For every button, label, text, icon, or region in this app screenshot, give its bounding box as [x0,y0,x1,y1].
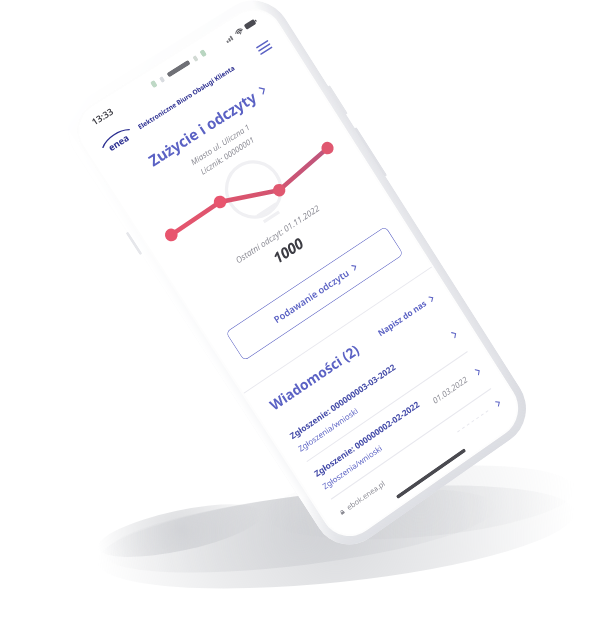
button[interactable]: Menu [249,33,279,63]
staticText: Ostatni odczyt: 01.11.2022 [178,167,375,302]
staticText: Zgłoszenia/wnioski [320,442,384,491]
staticText: Zużycie i odczyty [144,86,260,170]
staticText: Podawanie odczytu [271,266,352,326]
staticText: enea [106,131,131,153]
staticText: 13:33 [89,104,116,127]
staticText: Zgłoszenia/wnioski [296,404,360,454]
button[interactable]: Wiadomości (2) [266,340,363,414]
button[interactable]: Zużycie i odczyty [105,56,308,196]
button[interactable]: Enea logo [98,124,136,156]
staticText: ebok.enea.pl [345,478,387,512]
staticText: Napisz do nas [376,297,429,339]
button[interactable]: Zgłoszenie: 000000002-02-2022 [294,343,503,508]
staticText: 01.03.2022 [430,374,470,406]
staticText: Licznik: 00000001 [127,90,325,222]
staticText: Miasto ul. Uliczna 1 [120,79,318,211]
button[interactable]: Napisz do nas [376,292,436,339]
button[interactable]: Zgłoszenie: 000000003-03-2022 [269,306,480,470]
staticText: Elektroniczne Biuro Obsługi Klienta [136,63,237,131]
button[interactable]: Podawanie odczytu [226,226,403,361]
staticText: 1000 [186,180,387,322]
staticText: Zgłoszenie: 000000002-02-2022 [312,398,422,480]
staticText: Zgłoszenie: 000000003-03-2022 [288,361,398,442]
